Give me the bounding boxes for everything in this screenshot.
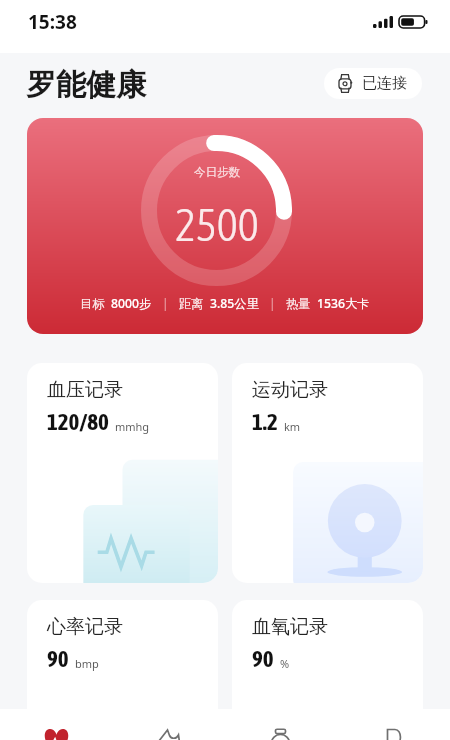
button[interactable]: 已连接 [324,68,422,99]
staticText: 1536大卡 [317,295,370,312]
staticText: 血氧记录 [252,615,328,639]
staticText: 热量 [286,296,311,311]
staticText: | [162,295,169,312]
button[interactable]: Health [0,709,112,740]
staticText: 已连接 [362,74,407,93]
staticText: 90 [47,646,69,672]
staticText: 目标 [80,296,105,311]
staticText: 心率记录 [47,615,123,639]
staticText: 90 [252,646,274,672]
staticText: 今日步数 [194,165,240,179]
button[interactable]: Pets [112,709,224,740]
staticText: 3.85公里 [210,295,259,312]
staticText: 1.2 [252,409,278,435]
staticText: 运动记录 [252,378,328,402]
staticText: | [269,295,276,312]
button[interactable]: 心率记录 [27,600,218,740]
staticText: % [280,656,290,671]
staticText: 血压记录 [47,378,123,402]
staticText: km [284,419,301,434]
button[interactable]: 血氧记录 [232,600,423,740]
staticText: bmp [75,656,99,671]
button[interactable]: 运动记录 [232,363,423,583]
staticText: 距离 [179,296,204,311]
staticText: 120/80 [47,409,109,435]
button[interactable]: 今日步数 [27,118,423,334]
staticText: mmhg [115,419,150,434]
button[interactable]: Device [224,709,337,740]
staticText: 2500 [175,199,259,250]
button[interactable]: Messages [337,709,450,740]
staticText: 15:38 [28,9,77,35]
button[interactable]: 血压记录 [27,363,218,583]
staticText: 罗能健康 [26,66,146,104]
staticText: 8000步 [111,295,152,312]
